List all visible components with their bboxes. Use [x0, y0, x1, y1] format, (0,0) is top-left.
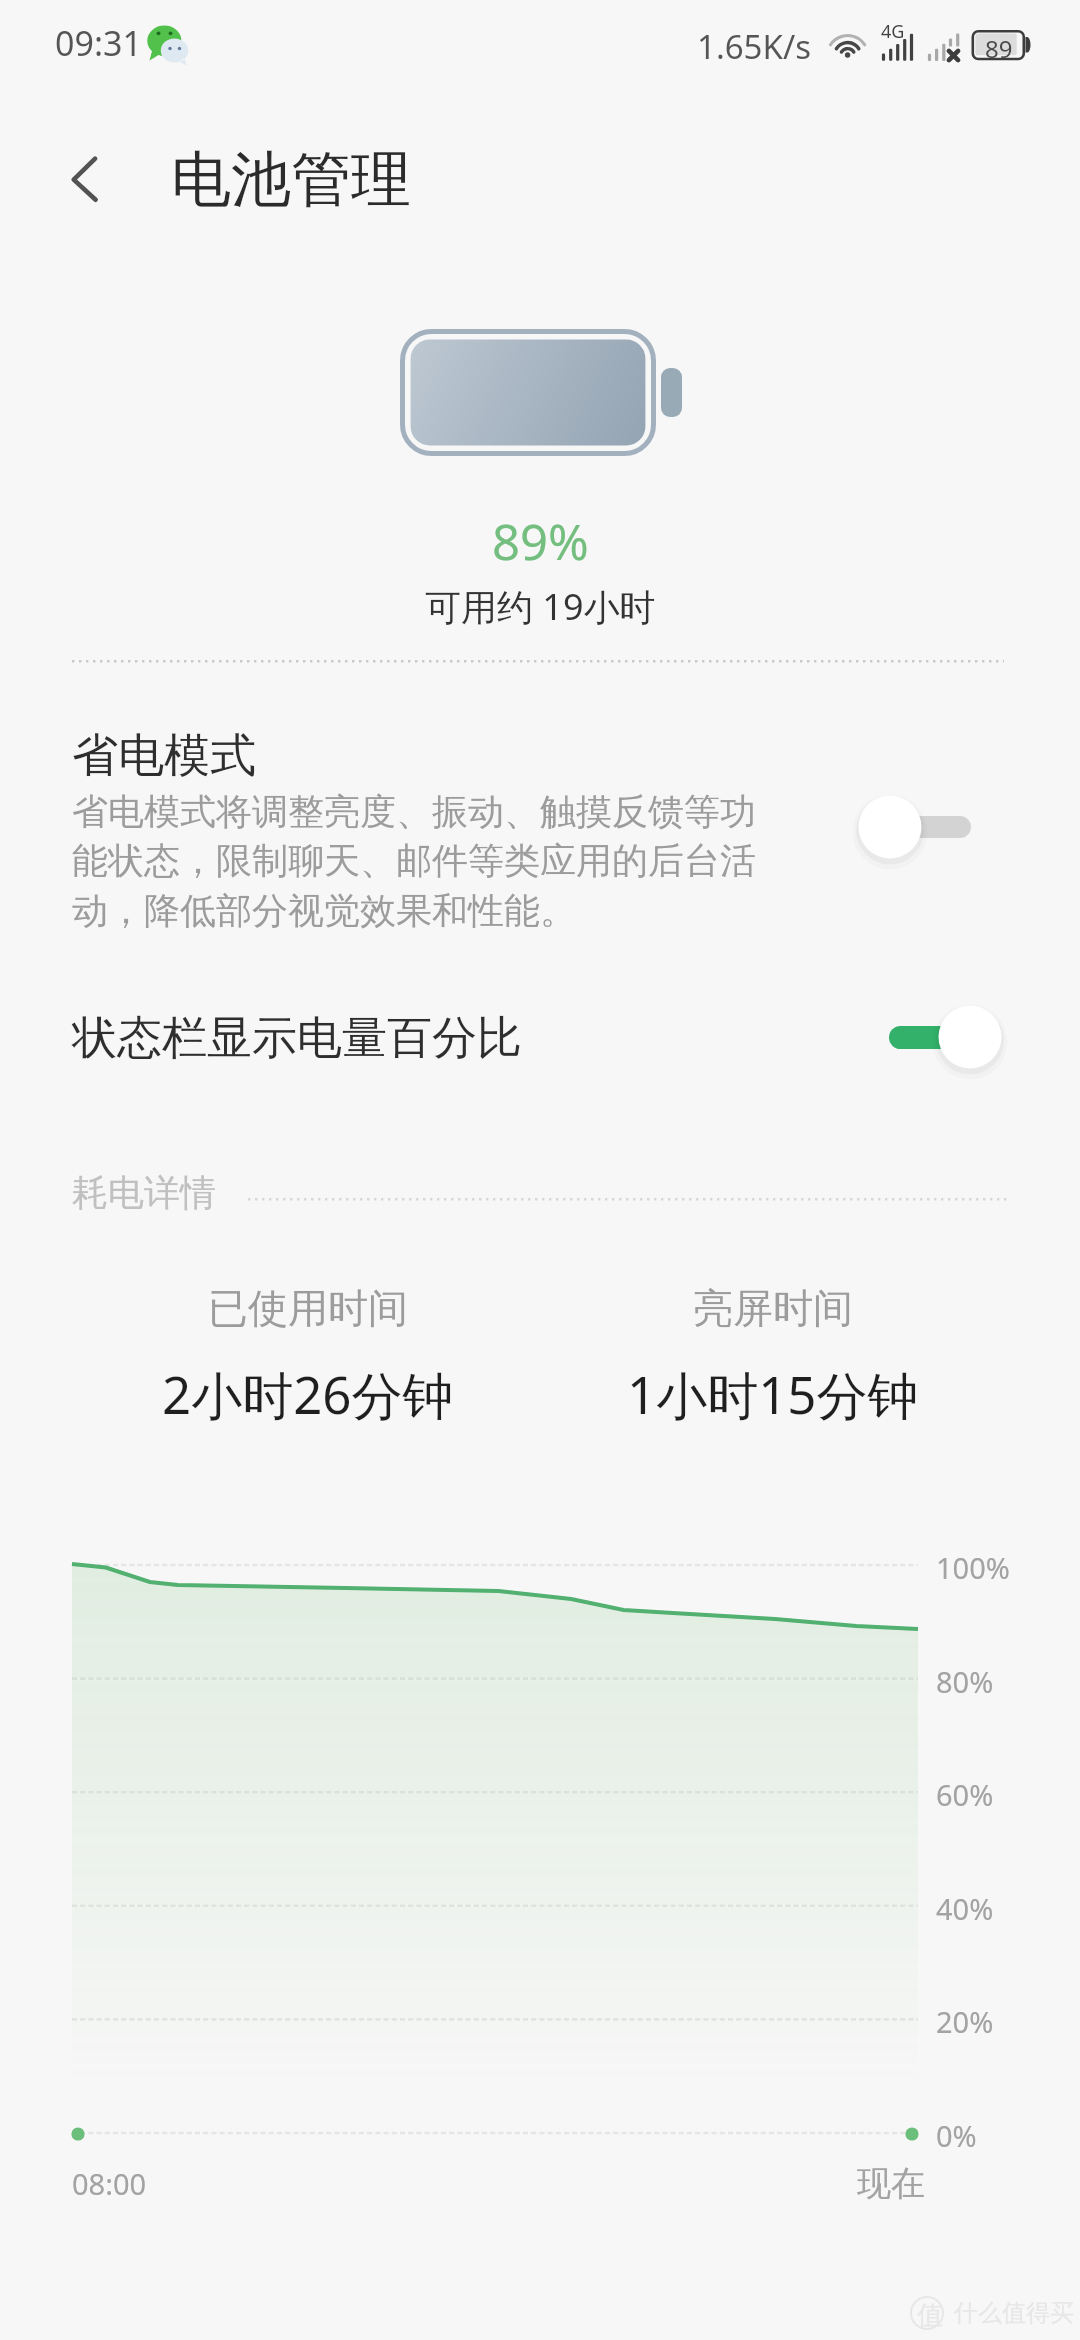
staticText: 08:00 — [72, 2164, 147, 2203]
staticText: 40% — [936, 1889, 994, 1928]
staticText: 09:31 — [55, 20, 142, 66]
staticText: 4G — [881, 19, 905, 44]
staticText: 100% — [936, 1548, 1010, 1587]
staticText: 0% — [936, 2116, 977, 2155]
staticText: 已使用时间 — [208, 1283, 408, 1333]
staticText: 省电模式将调整亮度、振动、触摸反馈等功能状态，限制聊天、邮件等类应用的后台活动，… — [72, 789, 772, 934]
staticText: 89 — [985, 32, 1013, 65]
staticText: 现在 — [857, 2162, 925, 2205]
staticText: 什么值得买 — [954, 2298, 1074, 2328]
button[interactable]: Toggle power saving mode — [844, 777, 1004, 877]
staticText: 1小时15分钟 — [627, 1359, 919, 1429]
staticText: 89% — [492, 508, 589, 575]
staticText: 可用约 19小时 — [425, 582, 656, 631]
button[interactable]: 省电模式 — [0, 700, 1080, 962]
staticText: 60% — [936, 1775, 994, 1814]
staticText: 省电模式 — [72, 727, 256, 785]
staticText: 2小时26分钟 — [162, 1359, 454, 1429]
staticText: 80% — [936, 1662, 994, 1701]
button[interactable]: 状态栏显示电量百分比 — [0, 980, 1080, 1110]
button[interactable]: Back — [56, 148, 116, 208]
staticText: 电池管理 — [171, 142, 411, 218]
staticText: 状态栏显示电量百分比 — [72, 1010, 522, 1067]
staticText: 耗电详情 — [72, 1170, 216, 1215]
staticText: 1.65K/s — [697, 24, 811, 69]
staticText: 亮屏时间 — [693, 1283, 853, 1333]
staticText: 20% — [936, 2002, 994, 2041]
button[interactable]: Toggle battery percentage in status bar — [880, 987, 1040, 1087]
staticText: 值 — [917, 2299, 943, 2332]
